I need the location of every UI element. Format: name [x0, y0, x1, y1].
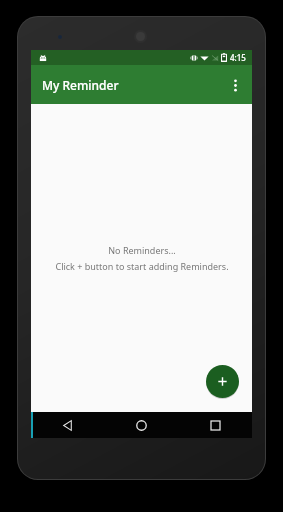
staticText: My Reminder	[42, 77, 119, 93]
staticText: 4:15	[230, 52, 246, 63]
staticText: Click + button to start adding Reminders…	[55, 260, 229, 272]
button[interactable]: Recent apps	[178, 412, 252, 438]
button[interactable]: Back	[31, 412, 104, 438]
staticText: No Reminders...	[108, 244, 176, 256]
button[interactable]: Home	[104, 412, 178, 438]
button[interactable]: Add reminder	[206, 365, 239, 398]
button[interactable]: More options	[218, 68, 252, 102]
